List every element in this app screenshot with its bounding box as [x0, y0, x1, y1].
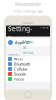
staticText: 9:41 [8, 26, 15, 29]
staticText: Settings [8, 24, 32, 42]
staticText: Manage account [22, 39, 33, 60]
staticText: in the settings app [13, 8, 43, 14]
staticText: 100% [40, 26, 48, 29]
staticText: Apple ID [15, 40, 30, 45]
button[interactable]: Focus [6, 76, 50, 81]
staticText: GENERAL [8, 53, 19, 56]
staticText: Focus [14, 76, 24, 82]
button[interactable]: Apple ID [6, 38, 50, 46]
staticText: Bluetooth [14, 61, 30, 67]
staticText: Cellular [14, 66, 28, 72]
button[interactable]: Sounds [6, 71, 50, 76]
staticText: Wi-Fi [14, 56, 23, 62]
staticText: Sounds [14, 71, 26, 77]
staticText: Meanwhile [15, 0, 41, 7]
button[interactable]: Manage account [6, 46, 50, 52]
button[interactable]: Wi-Fi [6, 56, 50, 61]
button[interactable]: Cellular [6, 66, 50, 71]
button[interactable]: Bluetooth [6, 61, 50, 66]
